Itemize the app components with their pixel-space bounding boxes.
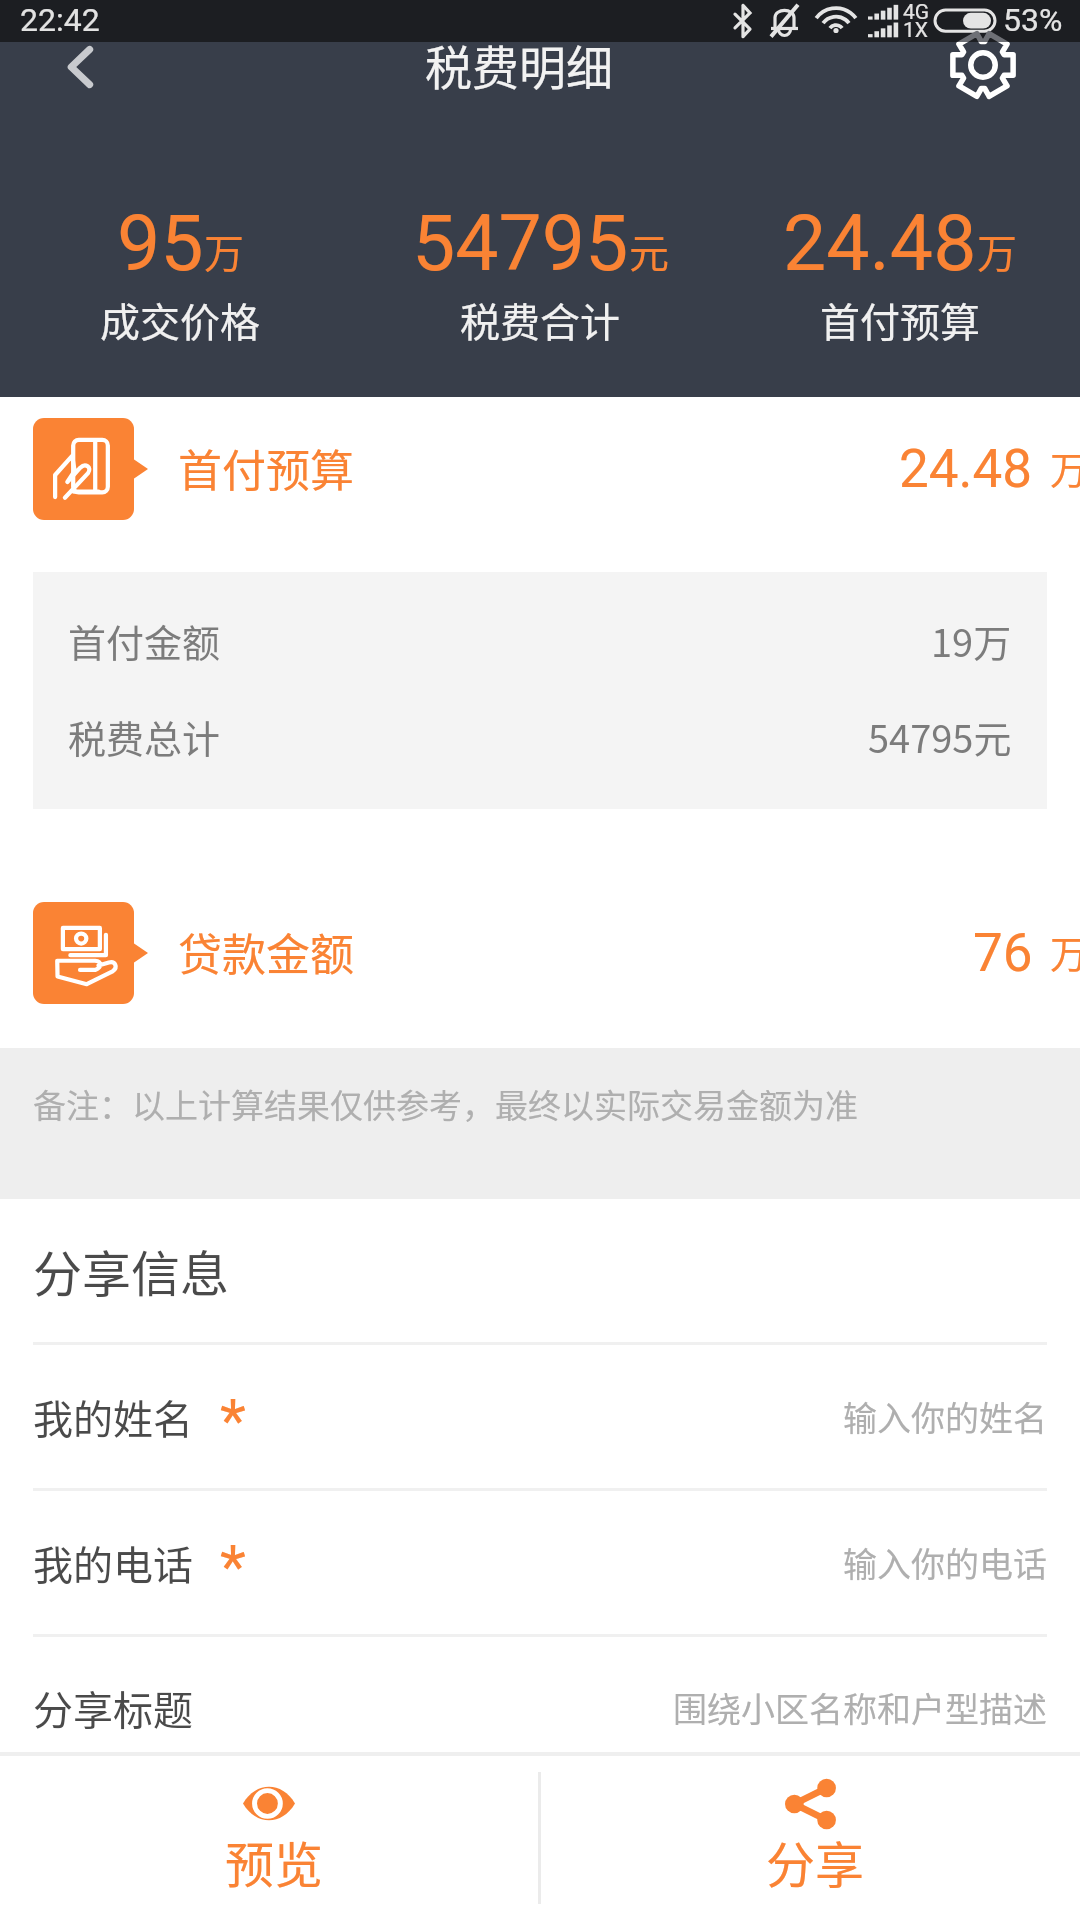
staticText: 输入你的姓名: [843, 1392, 1047, 1441]
button[interactable]: Preview: [0, 1756, 538, 1920]
staticText: 24.48: [899, 438, 1033, 500]
button[interactable]: 首付预算: [0, 397, 1080, 572]
staticText: 76: [973, 922, 1033, 984]
staticText: 成交价格: [100, 291, 260, 349]
staticText: 贷款金额: [178, 920, 354, 984]
staticText: 4G: [903, 0, 930, 25]
staticText: 税费合计: [460, 291, 620, 349]
staticText: 53%: [1003, 1, 1063, 39]
staticText: 分享标题: [33, 1679, 193, 1737]
staticText: 预览: [225, 1826, 324, 1897]
staticText: 万: [1050, 924, 1080, 979]
staticText: 首付预算: [178, 436, 354, 500]
staticText: *: [220, 1385, 246, 1455]
other: Preview: [243, 1782, 295, 1825]
staticText: *: [220, 1531, 246, 1601]
staticText: 1X: [903, 18, 928, 43]
staticText: 万: [204, 222, 244, 280]
staticText: 我的电话: [33, 1534, 193, 1592]
staticText: 95: [117, 199, 204, 289]
staticText: 备注：以上计算结果仅供参考，最终以实际交易金额为准: [33, 1080, 858, 1128]
staticText: 分享信息: [33, 1235, 230, 1306]
staticText: 54795: [412, 199, 629, 289]
staticText: 税费明细: [425, 30, 613, 94]
staticText: 输入你的电话: [843, 1538, 1047, 1587]
staticText: 19万: [931, 613, 1012, 668]
button[interactable]: 贷款金额: [0, 809, 1080, 1048]
staticText: 54795元: [868, 709, 1012, 764]
button[interactable]: 分享标题: [0, 1637, 1080, 1752]
staticText: 围绕小区名称和户型描述: [673, 1683, 1047, 1732]
staticText: 元: [629, 222, 669, 280]
staticText: 我的姓名: [33, 1388, 193, 1446]
staticText: 首付预算: [820, 291, 980, 349]
staticText: 分享: [766, 1826, 865, 1897]
button[interactable]: Back: [0, 42, 140, 106]
button[interactable]: Settings: [940, 0, 1080, 106]
staticText: 22:42: [20, 1, 100, 39]
other: Share: [785, 1779, 837, 1829]
staticText: 万: [1050, 440, 1080, 495]
staticText: 万: [977, 222, 1017, 280]
button[interactable]: 我的姓名: [0, 1345, 1080, 1488]
staticText: 24.48: [783, 199, 977, 289]
staticText: 税费总计: [68, 709, 221, 764]
button[interactable]: Share: [541, 1756, 1080, 1920]
button[interactable]: 我的电话: [0, 1491, 1080, 1634]
staticText: 首付金额: [68, 613, 221, 668]
